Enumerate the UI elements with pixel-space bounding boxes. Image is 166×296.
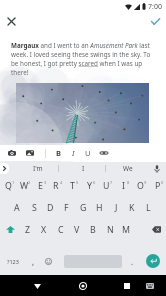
staticText: J <box>115 202 118 214</box>
staticText: 5 <box>76 180 79 185</box>
staticText: O <box>137 180 144 192</box>
button[interactable]: G <box>75 197 91 219</box>
button[interactable]: Emoji <box>41 250 56 272</box>
staticText: 3 <box>44 180 47 185</box>
button[interactable]: I <box>62 162 104 175</box>
button[interactable]: I <box>115 175 132 197</box>
staticText: , <box>32 256 35 267</box>
staticText: W <box>20 180 29 192</box>
staticText: X <box>41 224 47 236</box>
staticText: 9 <box>144 180 147 185</box>
button[interactable]: Backspace <box>146 219 166 240</box>
staticText: I <box>72 148 75 158</box>
button[interactable]: X <box>36 219 52 240</box>
button[interactable]: N <box>102 219 118 240</box>
button[interactable]: T <box>64 175 81 197</box>
button[interactable]: F <box>58 197 74 219</box>
button[interactable]: Period <box>124 250 140 272</box>
staticText: 0 <box>161 180 164 185</box>
staticText: 6 <box>93 180 96 185</box>
button[interactable]: I'm <box>17 162 59 175</box>
staticText: We <box>123 164 133 173</box>
button[interactable]: O <box>132 175 149 197</box>
staticText: H <box>96 202 103 214</box>
button[interactable]: Save <box>146 12 164 30</box>
button[interactable]: Enter <box>139 250 166 272</box>
staticText: Margaux and I went to an Amusement Park … <box>11 41 156 77</box>
staticText: F <box>64 202 69 214</box>
staticText: C <box>58 224 64 236</box>
button[interactable]: Y <box>81 175 98 197</box>
staticText: P <box>155 180 161 192</box>
button[interactable]: K <box>124 197 140 219</box>
staticText: B <box>90 224 96 236</box>
staticText: M <box>122 224 130 236</box>
staticText: U <box>103 180 110 192</box>
staticText: G <box>80 202 87 214</box>
button[interactable]: Insert image <box>23 146 37 160</box>
button[interactable]: P <box>149 175 166 197</box>
staticText: T <box>70 180 75 192</box>
button[interactable]: C <box>53 219 69 240</box>
button[interactable]: Comma <box>25 250 41 272</box>
button[interactable]: Insert link <box>97 146 111 160</box>
staticText: N <box>107 224 114 236</box>
button[interactable]: Shift <box>0 219 20 240</box>
button[interactable]: S <box>26 197 42 219</box>
staticText: I <box>82 164 85 173</box>
staticText: Y <box>87 180 92 192</box>
staticText: U <box>85 148 91 158</box>
button[interactable]: Change keyboard <box>142 278 158 294</box>
staticText: E <box>38 180 43 192</box>
button[interactable]: M <box>118 219 134 240</box>
button[interactable]: U <box>98 175 115 197</box>
button[interactable]: I <box>66 146 80 160</box>
staticText: 7:00 <box>148 2 162 12</box>
button[interactable]: Back <box>28 277 46 295</box>
staticText: ?123 <box>7 258 19 265</box>
button[interactable]: We <box>107 162 149 175</box>
staticText: Z <box>25 224 31 236</box>
staticText: 4 <box>60 180 63 185</box>
staticText: 7 <box>110 180 113 185</box>
button[interactable]: E <box>32 175 48 197</box>
button[interactable]: V <box>69 219 85 240</box>
button[interactable]: Camera <box>5 146 19 160</box>
button[interactable]: More suggestions <box>0 163 9 174</box>
staticText: I <box>122 180 125 192</box>
button[interactable]: Z <box>20 219 36 240</box>
button[interactable]: Home <box>74 277 92 295</box>
staticText: L <box>146 202 151 214</box>
staticText: 8 <box>127 180 130 185</box>
button[interactable]: B <box>85 219 101 240</box>
staticText: S <box>32 202 37 214</box>
button[interactable]: D <box>42 197 58 219</box>
staticText: A <box>14 202 20 214</box>
button[interactable]: U <box>81 146 95 160</box>
button[interactable]: W <box>16 175 32 197</box>
staticText: . <box>131 256 134 267</box>
button[interactable]: Q <box>0 175 16 197</box>
button[interactable]: L <box>140 197 156 219</box>
staticText: D <box>47 202 54 214</box>
staticText: V <box>74 224 80 236</box>
staticText: Q <box>5 180 12 192</box>
button[interactable]: J <box>108 197 124 219</box>
staticText: K <box>129 202 135 214</box>
staticText: R <box>53 180 59 192</box>
button[interactable]: Voice input <box>150 162 164 175</box>
staticText: I'm <box>33 164 43 173</box>
button[interactable]: B <box>51 146 65 160</box>
button[interactable]: Recent apps <box>118 277 136 295</box>
button[interactable]: Close <box>2 12 20 30</box>
button[interactable]: ?123 <box>0 250 25 272</box>
button[interactable]: R <box>48 175 64 197</box>
staticText: B <box>56 148 61 158</box>
button[interactable]: H <box>91 197 107 219</box>
button[interactable]: A <box>9 197 25 219</box>
staticText: 2 <box>28 180 31 185</box>
staticText: 1 <box>12 180 15 185</box>
